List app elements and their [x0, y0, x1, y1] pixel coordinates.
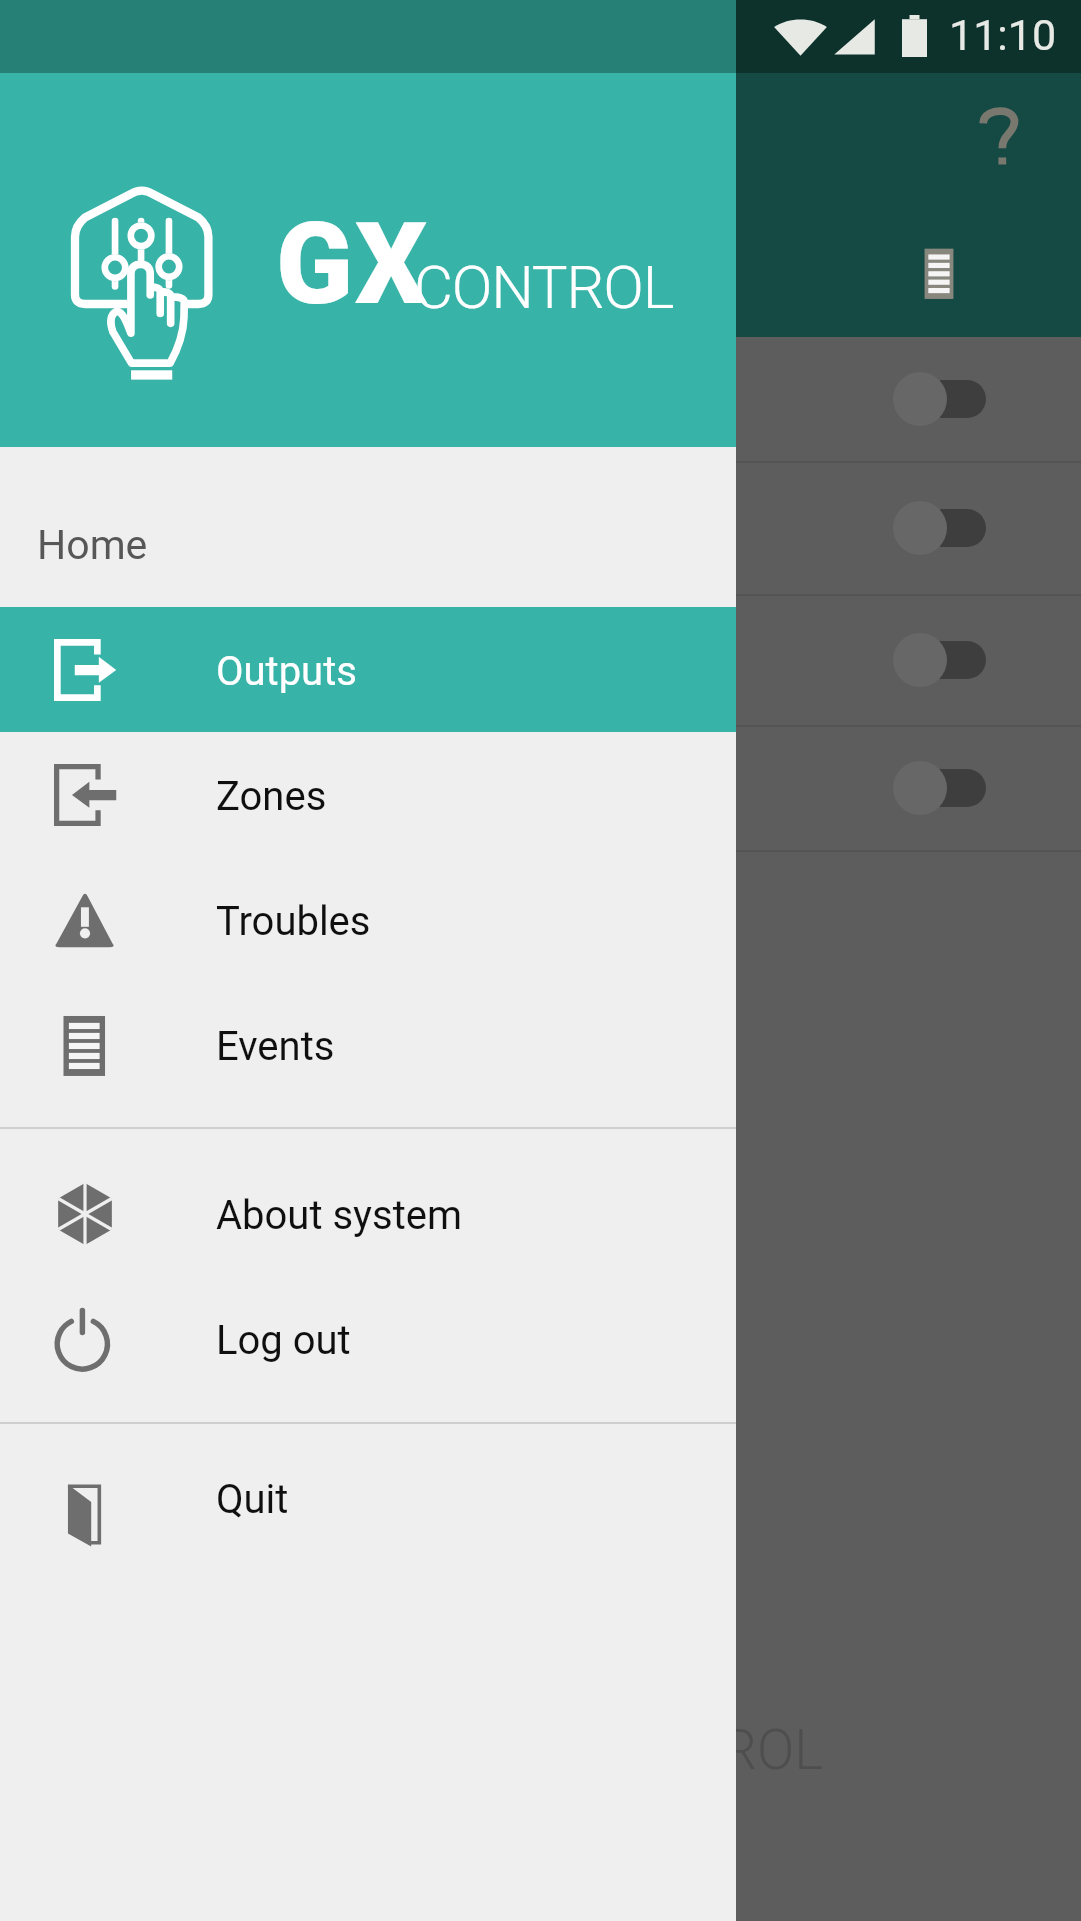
button[interactable]: [0, 596, 1081, 725]
staticText: Log out: [216, 1317, 351, 1364]
button[interactable]: Troubles: [0, 857, 736, 982]
staticText: CONTROL: [414, 252, 674, 322]
button[interactable]: Help: [956, 90, 1046, 180]
button[interactable]: Outputs: [0, 607, 736, 732]
button[interactable]: Home: [0, 447, 736, 607]
button[interactable]: Events: [0, 982, 736, 1107]
button[interactable]: Log out: [0, 1276, 736, 1401]
staticText: Troubles: [216, 898, 371, 945]
staticText: Quit: [216, 1476, 289, 1523]
button[interactable]: Quit: [0, 1435, 736, 1560]
staticText: Zones: [216, 773, 327, 820]
button[interactable]: Zones: [0, 732, 736, 857]
staticText: About system: [216, 1192, 463, 1239]
staticText: ROL: [722, 1718, 824, 1782]
button[interactable]: [0, 727, 1081, 850]
button[interactable]: About system: [0, 1151, 736, 1276]
button[interactable]: [0, 463, 1081, 594]
staticText: GX: [276, 198, 430, 330]
staticText: Outputs: [216, 648, 357, 695]
button[interactable]: [0, 337, 1081, 461]
staticText: Home: [37, 521, 148, 569]
staticText: 11:10: [949, 10, 1057, 60]
button[interactable]: Events: [894, 228, 984, 318]
staticText: Events: [216, 1023, 335, 1070]
